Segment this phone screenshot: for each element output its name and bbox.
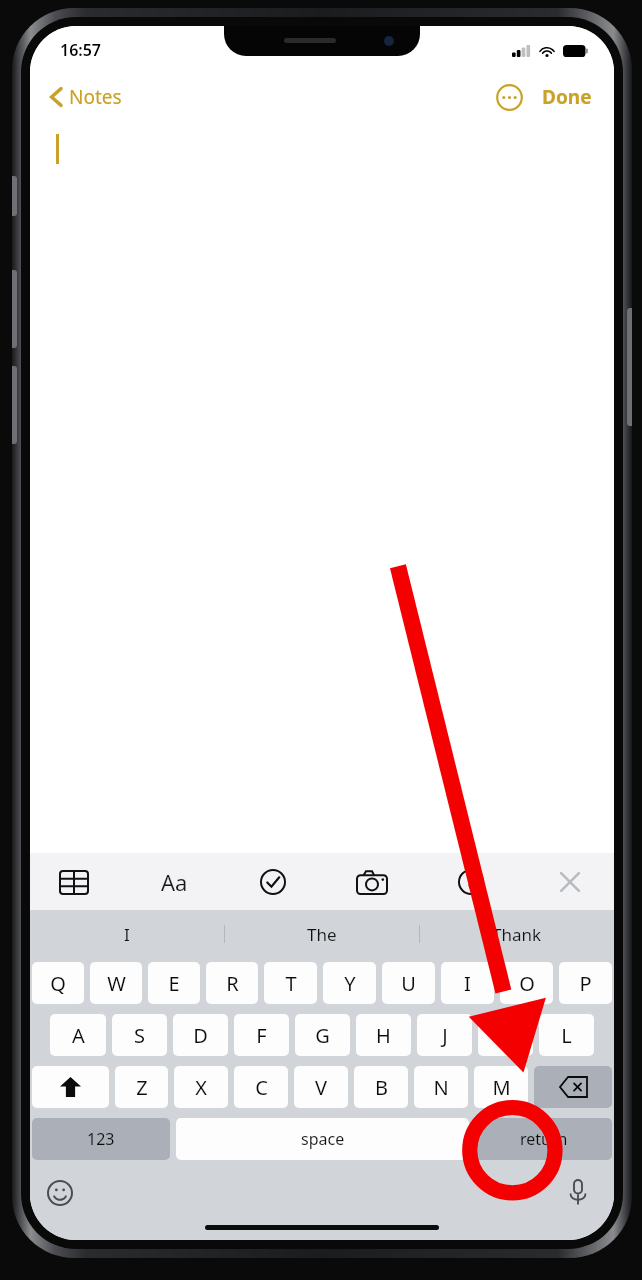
button[interactable]: Table <box>52 860 96 904</box>
button[interactable]: O <box>500 962 553 1004</box>
staticText: 16:57 <box>60 39 102 61</box>
button[interactable]: I <box>441 962 494 1004</box>
button[interactable]: Dictation <box>558 1173 598 1213</box>
staticText: P <box>579 970 592 997</box>
staticText: F <box>256 1022 267 1049</box>
button[interactable]: Shift <box>32 1066 109 1108</box>
staticText: C <box>255 1074 268 1101</box>
button[interactable]: Emoji <box>40 1173 80 1213</box>
button[interactable]: U <box>382 962 435 1004</box>
staticText: Done <box>542 84 592 110</box>
button[interactable]: F <box>234 1014 289 1056</box>
button[interactable]: Aa <box>152 860 196 904</box>
button[interactable]: Checklist <box>251 860 295 904</box>
button[interactable] <box>30 122 614 853</box>
staticText: R <box>226 970 239 997</box>
button[interactable]: H <box>356 1014 411 1056</box>
button[interactable]: I <box>30 910 224 958</box>
staticText: Y <box>344 970 356 997</box>
button[interactable]: M <box>474 1066 528 1108</box>
staticText: I <box>464 970 471 997</box>
staticText: E <box>168 970 180 997</box>
staticText: U <box>401 970 416 997</box>
button[interactable]: N <box>414 1066 468 1108</box>
button[interactable]: V <box>294 1066 348 1108</box>
staticText: N <box>433 1074 449 1101</box>
staticText: Thank <box>492 923 542 946</box>
button[interactable]: space <box>176 1118 469 1160</box>
button[interactable]: X <box>174 1066 228 1108</box>
staticText: return <box>520 1128 568 1150</box>
staticText: V <box>315 1074 327 1101</box>
button[interactable]: E <box>148 962 200 1004</box>
staticText: K <box>499 1022 512 1049</box>
button[interactable]: Close keyboard <box>548 860 592 904</box>
staticText: J <box>442 1022 448 1049</box>
staticText: Z <box>136 1074 148 1101</box>
button[interactable]: return <box>475 1118 612 1160</box>
button[interactable]: S <box>112 1014 167 1056</box>
button[interactable]: Backspace <box>534 1066 612 1108</box>
staticText: T <box>285 970 297 997</box>
staticText: S <box>134 1022 145 1049</box>
button[interactable]: B <box>354 1066 408 1108</box>
staticText: X <box>195 1074 207 1101</box>
staticText: The <box>307 923 337 946</box>
button[interactable]: P <box>559 962 612 1004</box>
button[interactable]: Thank <box>420 910 614 958</box>
staticText: 123 <box>87 1128 115 1150</box>
staticText: Notes <box>69 84 122 110</box>
button[interactable]: A <box>50 1014 106 1056</box>
button[interactable]: Y <box>323 962 376 1004</box>
button[interactable]: Markup <box>449 860 493 904</box>
button[interactable]: Z <box>115 1066 168 1108</box>
staticText: B <box>375 1074 388 1101</box>
staticText: D <box>193 1022 208 1049</box>
button[interactable]: Q <box>32 962 84 1004</box>
staticText: O <box>519 970 535 997</box>
button[interactable]: Done <box>538 80 596 114</box>
staticText: H <box>376 1022 391 1049</box>
button[interactable]: D <box>173 1014 228 1056</box>
staticText: Aa <box>161 867 188 897</box>
button[interactable]: C <box>234 1066 288 1108</box>
button[interactable]: 123 <box>32 1118 170 1160</box>
staticText: M <box>492 1074 511 1101</box>
button[interactable]: More options <box>492 80 526 114</box>
button[interactable]: Notes <box>44 80 128 114</box>
button[interactable]: J <box>417 1014 472 1056</box>
button[interactable]: G <box>295 1014 350 1056</box>
staticText: Q <box>50 970 66 997</box>
button[interactable]: T <box>264 962 317 1004</box>
button[interactable]: W <box>90 962 142 1004</box>
button[interactable]: R <box>206 962 258 1004</box>
staticText: W <box>107 970 126 997</box>
button[interactable]: The <box>225 910 419 958</box>
staticText: G <box>315 1022 330 1049</box>
button[interactable]: L <box>539 1014 594 1056</box>
staticText: L <box>561 1022 572 1049</box>
staticText: space <box>301 1128 345 1150</box>
button[interactable]: K <box>478 1014 533 1056</box>
button[interactable]: Camera <box>350 860 394 904</box>
staticText: I <box>124 923 130 946</box>
staticText: A <box>72 1022 85 1049</box>
